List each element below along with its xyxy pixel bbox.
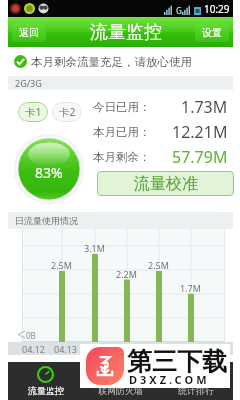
staticText: 04.13 [54, 343, 78, 355]
staticText: D3XZ.COM [129, 372, 210, 387]
staticText: 2.2M [116, 268, 137, 280]
staticText: 1.7M [180, 282, 201, 294]
button[interactable]: 流量监控 [8, 362, 83, 400]
staticText: 联网防火墙 [98, 385, 143, 396]
staticText: 0B [26, 330, 36, 341]
button[interactable]: 流量校准 [97, 171, 234, 196]
staticText: 2G/3G [15, 77, 42, 89]
staticText: 10:29 [204, 2, 230, 16]
staticText: 3.1M [84, 242, 105, 254]
staticText: G [176, 5, 182, 16]
other: 统计排行 [187, 366, 204, 383]
button[interactable]: 卡1 [18, 102, 48, 122]
staticText: 流量校准 [134, 174, 198, 194]
staticText: 本月剩余： [93, 150, 151, 164]
staticText: 日流量使用情况 [15, 215, 78, 226]
button[interactable]: 统计排行 [158, 362, 233, 400]
staticText: 2.5M [148, 259, 169, 271]
staticText: 设置 [202, 26, 222, 39]
staticText: 返回 [19, 26, 39, 39]
other: 流量监控 [37, 366, 54, 383]
staticText: 83% [35, 163, 63, 182]
staticText: 57.79M [172, 146, 228, 168]
staticText: 本月剩余流量充足，请放心使用 [31, 55, 192, 69]
staticText: 2.5M [51, 259, 72, 271]
staticText: 第三下载 [127, 346, 227, 377]
button[interactable]: 设置 [195, 23, 229, 42]
staticText: 本月已用： [93, 125, 151, 139]
staticText: 卡1 [25, 105, 42, 119]
staticText: 统计排行 [178, 385, 214, 396]
staticText: 04.12 [22, 343, 46, 355]
staticText: 卡2 [59, 105, 76, 119]
button[interactable]: 返回 [12, 23, 46, 42]
staticText: 12.21M [172, 121, 228, 143]
staticText: 1.73M [181, 96, 228, 118]
button[interactable]: 联网防火墙 [83, 362, 158, 400]
button[interactable]: 卡2 [52, 102, 82, 122]
other: 联网防火墙 [112, 366, 129, 383]
staticText: 流量监控 [28, 385, 64, 396]
staticText: 流量监控 [90, 21, 162, 44]
staticText: 今日已用： [93, 100, 151, 114]
